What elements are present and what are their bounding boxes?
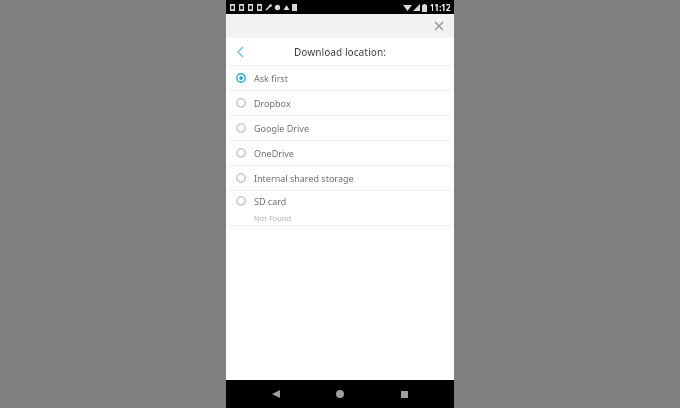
staticText: Dropbox — [254, 97, 291, 109]
staticText: Google Drive — [254, 122, 309, 134]
staticText: Ask first — [254, 72, 288, 84]
staticText: Not Found — [254, 213, 292, 223]
button[interactable]: Home — [326, 380, 354, 408]
staticText: 11:12 — [430, 2, 451, 13]
button[interactable]: Recents — [390, 380, 418, 408]
button[interactable]: SD card — [226, 191, 454, 225]
staticText: OneDrive — [254, 147, 294, 159]
button[interactable]: Close — [430, 17, 448, 35]
staticText: Download location: — [294, 45, 386, 59]
button[interactable]: Ask first — [226, 66, 454, 90]
button[interactable]: Google Drive — [226, 116, 454, 140]
button[interactable]: Back — [262, 380, 290, 408]
button[interactable]: Internal shared storage — [226, 166, 454, 190]
button[interactable]: OneDrive — [226, 141, 454, 165]
staticText: Internal shared storage — [254, 172, 354, 184]
staticText: SD card — [254, 195, 287, 207]
button[interactable]: Back — [230, 42, 250, 62]
button[interactable]: Dropbox — [226, 91, 454, 115]
